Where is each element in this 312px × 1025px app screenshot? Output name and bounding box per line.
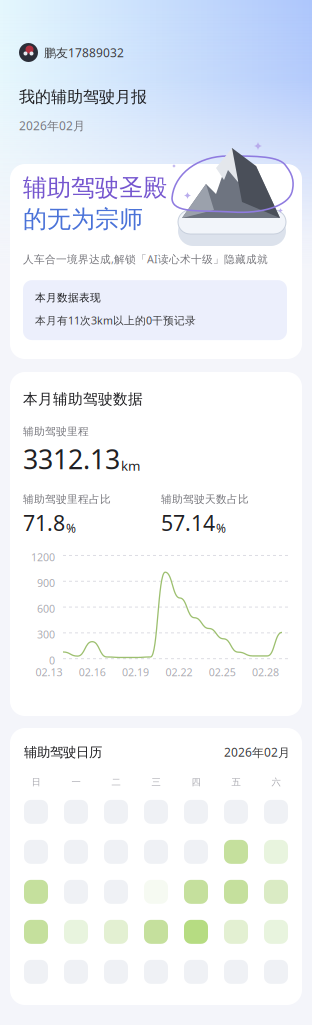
button[interactable]: Day xyxy=(104,880,128,904)
staticText: % xyxy=(216,520,226,536)
staticText: 71.8 xyxy=(23,509,65,537)
button[interactable]: Day xyxy=(24,960,48,984)
button[interactable]: Day xyxy=(144,920,168,944)
staticText: 四 xyxy=(191,776,200,788)
button[interactable]: Day xyxy=(144,840,168,864)
button[interactable]: Day xyxy=(144,800,168,824)
button[interactable]: Day xyxy=(104,800,128,824)
button[interactable]: Day xyxy=(24,920,48,944)
button[interactable]: Day xyxy=(104,960,128,984)
staticText: 900 xyxy=(37,576,55,590)
staticText: 日 xyxy=(31,776,40,788)
staticText: 300 xyxy=(37,627,55,642)
staticText: km xyxy=(121,457,140,474)
button[interactable]: Day xyxy=(184,960,208,984)
staticText: 六 xyxy=(271,776,280,788)
staticText: 02.19 xyxy=(122,665,149,679)
button[interactable]: Day xyxy=(144,960,168,984)
staticText: 2026年02月 xyxy=(224,744,290,760)
button[interactable]: Day xyxy=(24,840,48,864)
staticText: 02.25 xyxy=(209,665,236,679)
staticText: 二 xyxy=(111,776,120,788)
staticText: 本月辅助驾驶数据 xyxy=(23,390,143,408)
staticText: 02.13 xyxy=(35,665,62,679)
button[interactable]: Day xyxy=(184,840,208,864)
button[interactable]: Day xyxy=(104,920,128,944)
staticText: 本月数据表现 xyxy=(35,291,101,304)
button[interactable]: Day xyxy=(64,960,88,984)
staticText: 02.16 xyxy=(79,665,106,679)
staticText: 本月有11次3km以上的0干预记录 xyxy=(35,313,196,327)
staticText: 辅助驾驶里程占比 xyxy=(23,492,111,506)
button[interactable]: Day xyxy=(64,800,88,824)
staticText: 的无为宗师 xyxy=(23,204,143,234)
staticText: 02.28 xyxy=(252,665,279,679)
staticText: 02.22 xyxy=(165,665,192,679)
button[interactable]: Day xyxy=(184,800,208,824)
staticText: 600 xyxy=(37,602,55,616)
staticText: 0 xyxy=(49,653,55,667)
button[interactable]: Day xyxy=(264,840,288,864)
staticText: 三 xyxy=(151,776,160,788)
button[interactable]: Day xyxy=(104,840,128,864)
button[interactable]: Day xyxy=(64,840,88,864)
staticText: 鹏友17889032 xyxy=(44,44,124,60)
button[interactable]: Day xyxy=(264,960,288,984)
staticText: 57.14 xyxy=(161,509,215,537)
button[interactable]: Day xyxy=(224,880,248,904)
button[interactable]: Day xyxy=(224,840,248,864)
button[interactable]: Day xyxy=(64,920,88,944)
staticText: 辅助驾驶里程 xyxy=(23,425,89,438)
button[interactable]: Day xyxy=(64,880,88,904)
staticText: 1200 xyxy=(31,550,55,564)
button[interactable]: 鹏友17889032 xyxy=(19,43,124,62)
button[interactable]: Day xyxy=(224,920,248,944)
staticText: 辅助驾驶天数占比 xyxy=(161,492,249,506)
button[interactable]: Day xyxy=(24,800,48,824)
staticText: 人车合一境界达成,解锁「AI读心术十级」隐藏成就 xyxy=(23,252,268,266)
staticText: % xyxy=(66,520,76,536)
button[interactable]: Day xyxy=(224,800,248,824)
staticText: 我的辅助驾驶月报 xyxy=(19,87,147,107)
staticText: 2026年02月 xyxy=(19,118,85,134)
button[interactable]: Day xyxy=(144,880,168,904)
button[interactable]: Day xyxy=(264,920,288,944)
staticText: 辅助驾驶日历 xyxy=(24,744,102,760)
button[interactable]: Day xyxy=(24,880,48,904)
staticText: 五 xyxy=(231,776,240,788)
staticText: 一 xyxy=(71,776,80,788)
button[interactable]: Day xyxy=(264,800,288,824)
button[interactable]: Day xyxy=(184,920,208,944)
button[interactable]: Day xyxy=(224,960,248,984)
button[interactable]: Day xyxy=(264,880,288,904)
staticText: 辅助驾驶圣殿 xyxy=(23,173,167,202)
staticText: 3312.13 xyxy=(23,441,120,476)
button[interactable]: Day xyxy=(184,880,208,904)
